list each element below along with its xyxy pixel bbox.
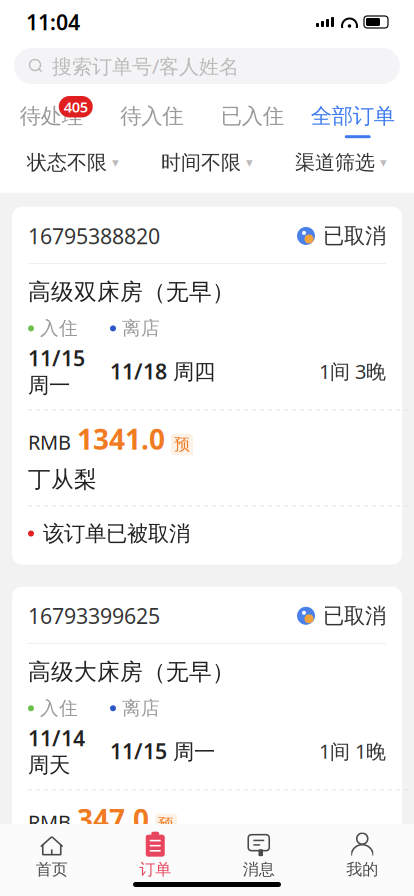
button[interactable]: 16793399625 [12,587,402,896]
staticText: 1间 3晚 [319,358,386,384]
staticText: 首页 [36,860,68,879]
staticText: ▾ [112,155,119,170]
staticText: 11:04 [26,8,80,36]
staticText: 离店 [122,697,160,720]
staticText: 搜索订单号/客人姓名 [52,53,239,79]
staticText: 我的 [346,860,378,879]
staticText: 丁从梨 [28,466,97,493]
button[interactable]: 16795388820 [12,207,402,565]
staticText: 待处理 [20,103,83,129]
button[interactable]: 时间不限 [140,144,274,181]
button[interactable]: 首页 [0,827,103,879]
staticText: 11/15 周一 [110,737,215,765]
staticText: 高级双床房（无早） [28,278,235,306]
staticText: 离店 [122,317,160,340]
staticText: ▾ [380,155,387,170]
button[interactable]: 渠道筛选 [274,144,408,181]
button[interactable]: 待入住 [106,96,207,138]
staticText: 入住 [40,317,78,340]
button[interactable]: 搜索订单号/客人姓名 [14,48,400,84]
staticText: 1间 1晚 [319,738,386,764]
staticText: 11/14 周天 [28,724,85,778]
button[interactable]: 待处理 [6,96,106,138]
staticText: 入住 [40,697,78,720]
staticText: 状态不限 [27,150,107,175]
staticText: 预 [158,815,174,834]
staticText: 405 [64,97,88,116]
staticText: 已取消 [323,223,386,249]
staticText: 消息 [243,860,275,879]
staticText: 订单 [139,860,171,879]
staticText: ▾ [246,155,253,170]
staticText: 已入住 [221,103,284,129]
staticText: RMB [28,429,71,455]
staticText: RMB [28,809,71,835]
staticText: 全部订单 [311,103,395,129]
staticText: 该订单已被取消 [43,520,190,547]
button[interactable]: 状态不限 [6,144,140,181]
staticText: 11/15 周一 [28,344,85,398]
button[interactable]: 我的 [310,827,414,879]
staticText: 16793399625 [28,602,160,630]
staticText: 待入住 [120,103,183,129]
staticText: 1341.0 [77,420,165,458]
staticText: 347.0 [77,800,149,837]
button[interactable]: 全部订单 [307,96,408,138]
staticText: 11/18 周四 [110,357,215,385]
staticText: 时间不限 [161,150,241,175]
staticText: 渠道筛选 [295,150,375,175]
button[interactable]: 消息 [207,827,310,879]
staticText: 梁鸿 [28,845,74,873]
staticText: 16795388820 [28,222,160,250]
staticText: 高级大床房（无早） [28,658,235,686]
staticText: 预 [174,435,190,454]
button[interactable]: 已入住 [207,96,307,138]
staticText: 已取消 [323,603,386,629]
button[interactable]: 订单 [103,827,207,879]
